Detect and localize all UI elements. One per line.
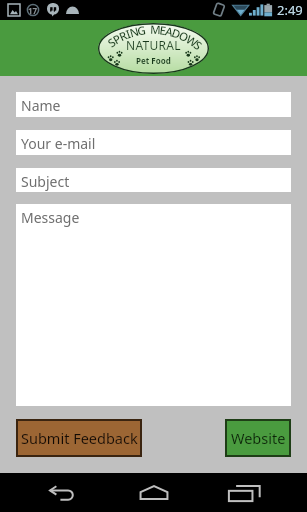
- staticText: Submit Feedback: [21, 428, 138, 448]
- staticText: 2:49: [277, 1, 303, 19]
- button[interactable]: Back: [30, 473, 96, 512]
- button[interactable]: Message: [16, 204, 291, 406]
- button[interactable]: Submit Feedback: [16, 419, 142, 457]
- staticText: Name: [21, 96, 61, 115]
- button[interactable]: Name: [16, 92, 291, 117]
- staticText: Pet Food: [136, 55, 171, 66]
- button[interactable]: Recent apps: [213, 473, 279, 512]
- staticText: Your e-mail: [21, 134, 96, 153]
- button[interactable]: Subject: [16, 168, 291, 192]
- staticText: Subject: [21, 172, 70, 191]
- staticText: Website: [231, 428, 286, 448]
- staticText: Message: [21, 208, 80, 227]
- button[interactable]: Your e-mail: [16, 130, 291, 155]
- button[interactable]: Home: [121, 473, 187, 512]
- button[interactable]: Website: [225, 419, 291, 457]
- staticText: NATURAL: [126, 37, 181, 53]
